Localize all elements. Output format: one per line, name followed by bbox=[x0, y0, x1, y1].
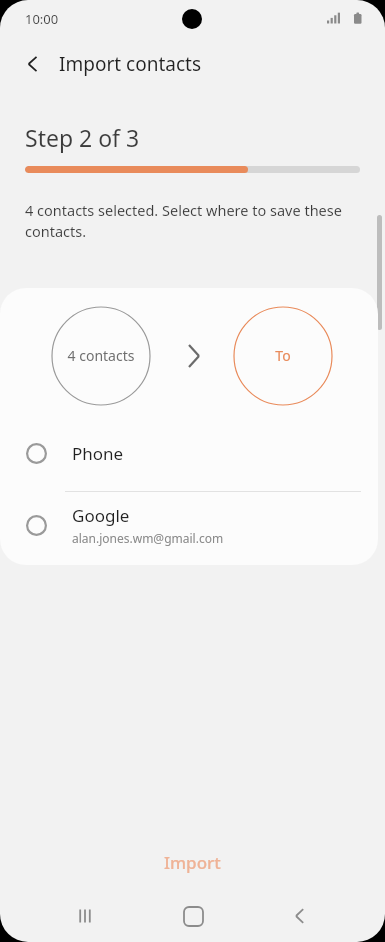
staticText: Step 2 of 3 bbox=[25, 122, 140, 153]
button[interactable]: Home bbox=[169, 892, 217, 940]
staticText: Import contacts bbox=[59, 51, 201, 77]
button[interactable]: Phone bbox=[0, 424, 378, 482]
staticText: Google bbox=[72, 504, 130, 527]
button[interactable]: Import bbox=[0, 840, 385, 884]
button[interactable]: Recents bbox=[61, 892, 109, 940]
staticText: To bbox=[262, 346, 304, 365]
button[interactable]: Back bbox=[276, 892, 324, 940]
staticText: Import bbox=[164, 851, 221, 874]
staticText: alan.jones.wm@gmail.com bbox=[72, 530, 224, 546]
staticText: 10:00 bbox=[25, 10, 59, 28]
button[interactable]: Back bbox=[9, 40, 57, 88]
staticText: 4 contacts selected. Select where to sav… bbox=[25, 200, 350, 242]
button[interactable]: Google bbox=[0, 492, 378, 558]
staticText: 4 contacts bbox=[62, 346, 140, 365]
staticText: Phone bbox=[72, 442, 124, 465]
